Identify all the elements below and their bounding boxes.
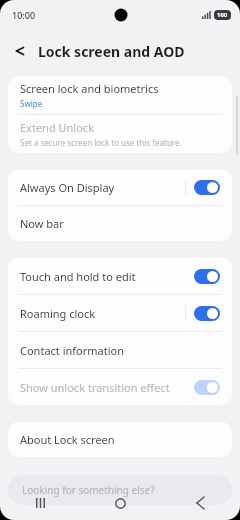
button[interactable]: Screen lock and biometrics bbox=[8, 76, 232, 114]
staticText: About Lock screen bbox=[20, 432, 115, 447]
staticText: Screen lock and biometrics bbox=[20, 81, 159, 96]
staticText: Now bar bbox=[20, 216, 64, 231]
button[interactable] bbox=[194, 380, 220, 395]
button[interactable]: Back bbox=[160, 486, 240, 520]
button[interactable]: Extend Unlock bbox=[8, 115, 232, 153]
staticText: Extend Unlock bbox=[20, 120, 95, 135]
button[interactable]: Roaming clock bbox=[8, 295, 232, 331]
button[interactable]: Home bbox=[80, 486, 160, 520]
button[interactable]: Back bbox=[6, 37, 34, 65]
button[interactable] bbox=[194, 269, 220, 284]
button[interactable]: Contact information bbox=[8, 332, 232, 368]
staticText: Always On Display bbox=[20, 180, 115, 195]
button[interactable]: Recent apps bbox=[0, 486, 80, 520]
staticText: 10:00 bbox=[12, 9, 36, 21]
button[interactable] bbox=[194, 306, 220, 321]
staticText: 100 bbox=[217, 11, 228, 19]
button[interactable] bbox=[194, 180, 220, 195]
staticText: Roaming clock bbox=[20, 306, 96, 321]
staticText: Lock screen and AOD bbox=[38, 42, 185, 61]
button[interactable]: Now bar bbox=[8, 206, 232, 241]
staticText: Set a secure screen lock to use this fea… bbox=[20, 137, 182, 148]
staticText: Touch and hold to edit bbox=[20, 269, 136, 284]
staticText: Show unlock transition effect bbox=[20, 380, 170, 395]
button[interactable]: Always On Display bbox=[8, 170, 232, 205]
staticText: Swipe bbox=[20, 98, 43, 109]
staticText: Looking for something else? bbox=[22, 483, 155, 497]
staticText: Contact information bbox=[20, 343, 124, 358]
button[interactable]: About Lock screen bbox=[8, 422, 232, 457]
button[interactable]: Looking for something else? bbox=[8, 475, 232, 505]
button[interactable]: Touch and hold to edit bbox=[8, 258, 232, 294]
button[interactable]: Show unlock transition effect bbox=[8, 369, 232, 405]
